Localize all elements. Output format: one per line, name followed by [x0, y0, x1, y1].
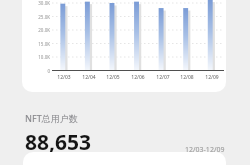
- staticText: 25.0K: [38, 14, 50, 20]
- staticText: 0: [47, 68, 50, 74]
- button[interactable]: NFT总用户数: [0, 112, 250, 157]
- button[interactable]: NFT user bar chart: [22, 0, 226, 92]
- staticText: 12/03: [57, 74, 71, 81]
- staticText: 12/06: [131, 74, 145, 81]
- staticText: 12/08: [180, 74, 194, 81]
- staticText: 12/05: [106, 74, 120, 81]
- staticText: 20.0K: [38, 27, 50, 33]
- staticText: 15.0K: [38, 41, 50, 47]
- staticText: 30.0K: [38, 0, 50, 6]
- staticText: 12/09: [205, 74, 219, 81]
- staticText: 12/03-12/09: [185, 145, 225, 155]
- staticText: 12/04: [82, 74, 96, 81]
- staticText: 88,653: [25, 128, 92, 157]
- staticText: 12/07: [156, 74, 170, 81]
- staticText: NFT总用户数: [25, 112, 78, 124]
- staticText: 10.0K: [38, 54, 50, 60]
